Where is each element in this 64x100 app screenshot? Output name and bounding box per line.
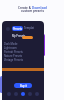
button[interactable]: Portrait Presets [4, 50, 25, 54]
staticText: Lightroom Presets [4, 46, 25, 50]
button[interactable]: Dark Mode Presets [4, 42, 25, 46]
staticText: Presets [13, 27, 22, 31]
button[interactable]: Nav 3 [28, 92, 32, 96]
staticText: Dark Mode Presets [4, 42, 25, 46]
staticText: Download [32, 6, 47, 10]
staticText: Portrait Presets [4, 50, 23, 54]
staticText: Create & [18, 6, 32, 10]
button[interactable]: Vintage Presets [4, 58, 25, 62]
button[interactable]: Presets [12, 26, 23, 31]
button[interactable]: Nature Presets [4, 54, 25, 58]
button[interactable]: Menu [6, 27, 10, 31]
button[interactable]: Buy it [14, 83, 32, 88]
button[interactable]: Nav 4 [35, 92, 39, 96]
button[interactable]: Nav 0 [7, 92, 11, 96]
staticText: My Presets [12, 34, 26, 38]
staticText: Vintage Presets [4, 58, 23, 62]
button[interactable]: Nav 1 [14, 92, 18, 96]
staticText: Nature Presets [4, 54, 23, 58]
button[interactable]: Templates [24, 26, 35, 31]
staticText: Templates [24, 26, 35, 31]
button[interactable]: Lightroom Presets [4, 46, 25, 50]
staticText: custom presets [21, 9, 44, 13]
button[interactable]: Nav 2 [21, 92, 25, 96]
staticText: Buy it [20, 84, 27, 88]
